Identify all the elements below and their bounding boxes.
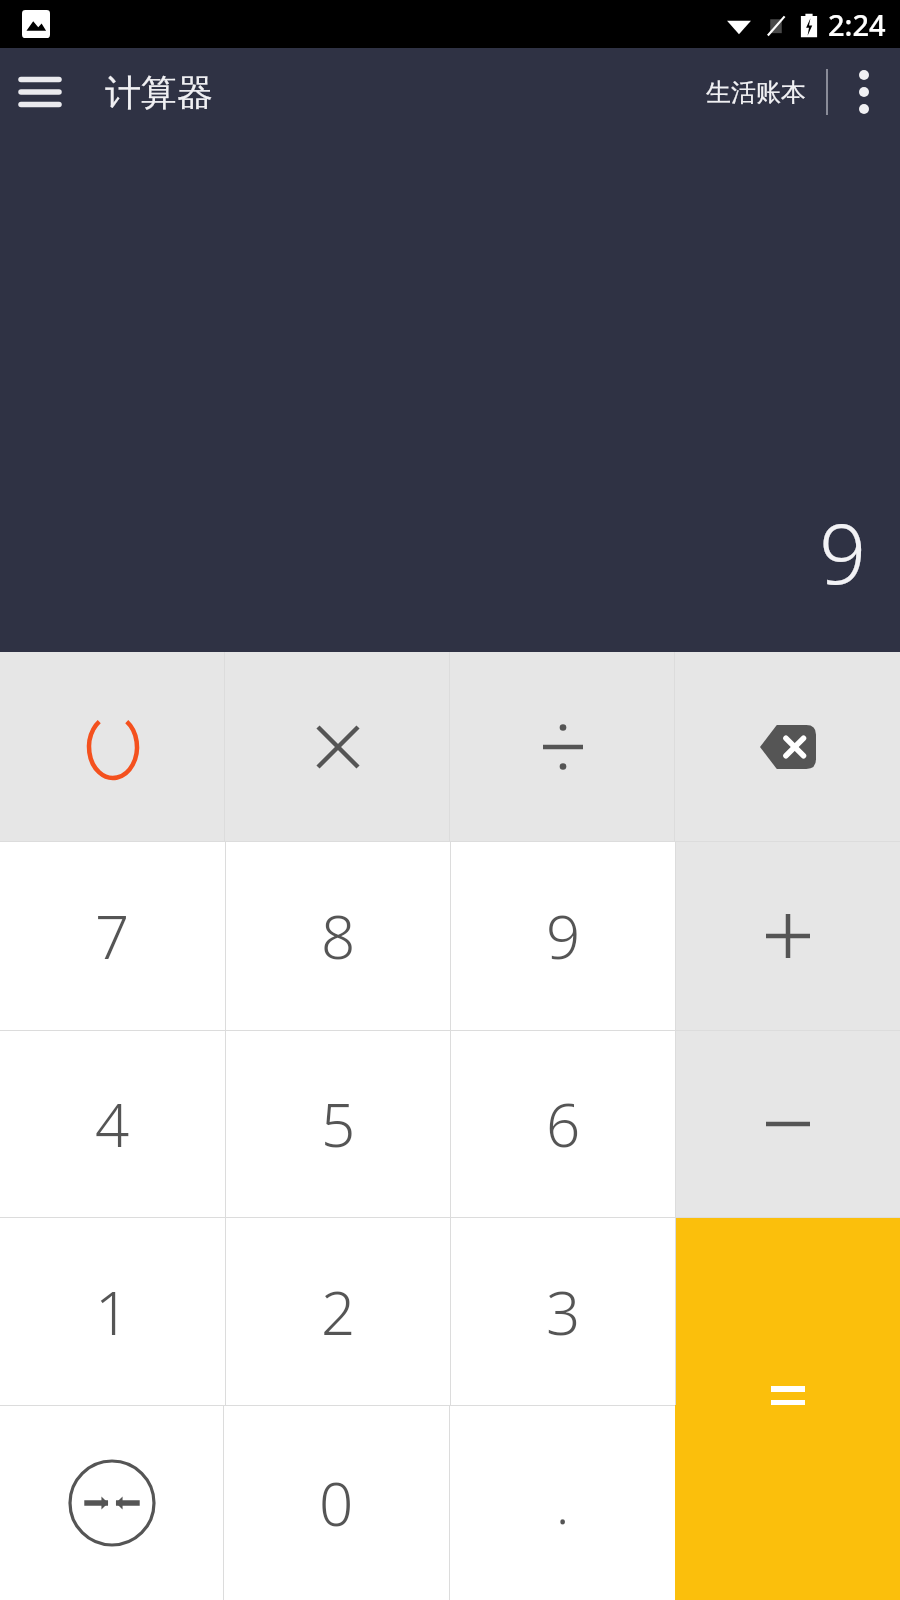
- button[interactable]: 5: [226, 1031, 450, 1217]
- button[interactable]: Clear: [0, 652, 225, 841]
- button[interactable]: 3: [451, 1218, 675, 1405]
- button[interactable]: Swap: [0, 1406, 224, 1600]
- button[interactable]: Divide: [450, 652, 675, 841]
- button[interactable]: .: [450, 1406, 675, 1600]
- staticText: .: [556, 1466, 570, 1540]
- button[interactable]: 6: [451, 1031, 675, 1217]
- button[interactable]: 生活账本: [698, 63, 814, 122]
- staticText: 4: [95, 1083, 130, 1165]
- button[interactable]: 4: [0, 1031, 225, 1217]
- staticText: 7: [95, 895, 130, 977]
- staticText: 3: [546, 1271, 581, 1353]
- button[interactable]: Plus: [676, 842, 900, 1030]
- button[interactable]: Backspace: [675, 652, 900, 841]
- button[interactable]: Minus: [676, 1031, 900, 1217]
- staticText: 生活账本: [706, 77, 806, 108]
- button[interactable]: 2: [226, 1218, 450, 1405]
- staticText: 0: [319, 1462, 354, 1544]
- staticText: 2:24: [828, 5, 886, 44]
- staticText: 6: [546, 1083, 581, 1165]
- button[interactable]: 1: [0, 1218, 225, 1405]
- staticText: 2: [321, 1271, 356, 1353]
- button[interactable]: 9: [451, 842, 675, 1030]
- staticText: 5: [321, 1083, 356, 1165]
- staticText: 9: [819, 496, 866, 608]
- staticText: 1: [95, 1271, 130, 1353]
- button[interactable]: 8: [226, 842, 450, 1030]
- staticText: 计算器: [105, 70, 213, 115]
- button[interactable]: Multiply: [225, 652, 450, 841]
- button[interactable]: Equals: [676, 1218, 900, 1405]
- button[interactable]: 7: [0, 842, 225, 1030]
- button[interactable]: Menu: [10, 62, 70, 122]
- button[interactable]: 0: [224, 1406, 449, 1600]
- staticText: 9: [546, 895, 581, 977]
- button[interactable]: More options: [828, 48, 900, 136]
- staticText: 8: [321, 895, 356, 977]
